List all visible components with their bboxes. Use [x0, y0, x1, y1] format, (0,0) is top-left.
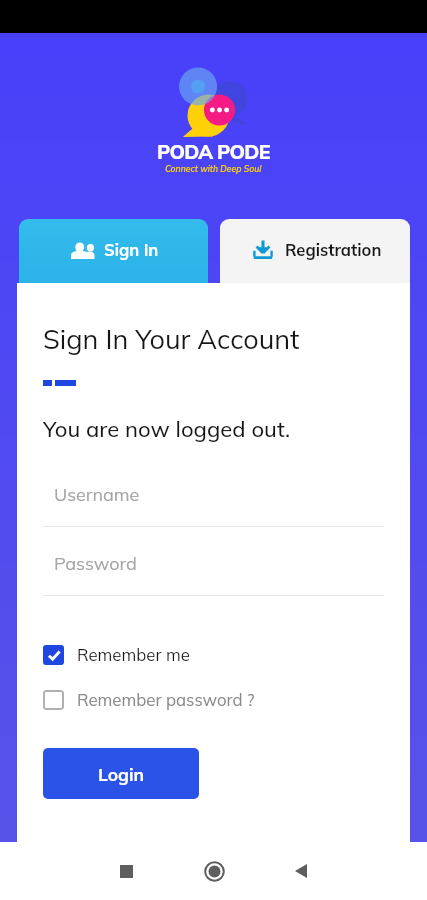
button[interactable]: Registration [220, 219, 410, 283]
staticText: Login [98, 763, 145, 785]
staticText: Sign In Your Account [43, 322, 300, 356]
button[interactable]: Remember password ? [43, 689, 384, 710]
staticText: Remember password ? [77, 689, 255, 710]
button[interactable]: Back [279, 849, 323, 893]
button[interactable]: Home [192, 849, 236, 893]
staticText: Registration [285, 239, 382, 260]
staticText: You are now logged out. [43, 415, 291, 443]
button[interactable]: Sign In [19, 219, 208, 283]
button[interactable]: Remember me [43, 644, 384, 665]
button[interactable]: Password [43, 552, 384, 596]
button[interactable]: Login [43, 748, 199, 799]
staticText: Remember me [77, 644, 190, 665]
button[interactable]: Username [43, 483, 384, 527]
button[interactable]: Recent apps [104, 849, 148, 893]
staticText: Password [54, 552, 137, 575]
staticText: Username [54, 483, 140, 506]
staticText: PODA PODE [157, 139, 270, 163]
staticText: Connect with Deep Soul [165, 163, 262, 174]
staticText: Sign In [104, 239, 159, 260]
